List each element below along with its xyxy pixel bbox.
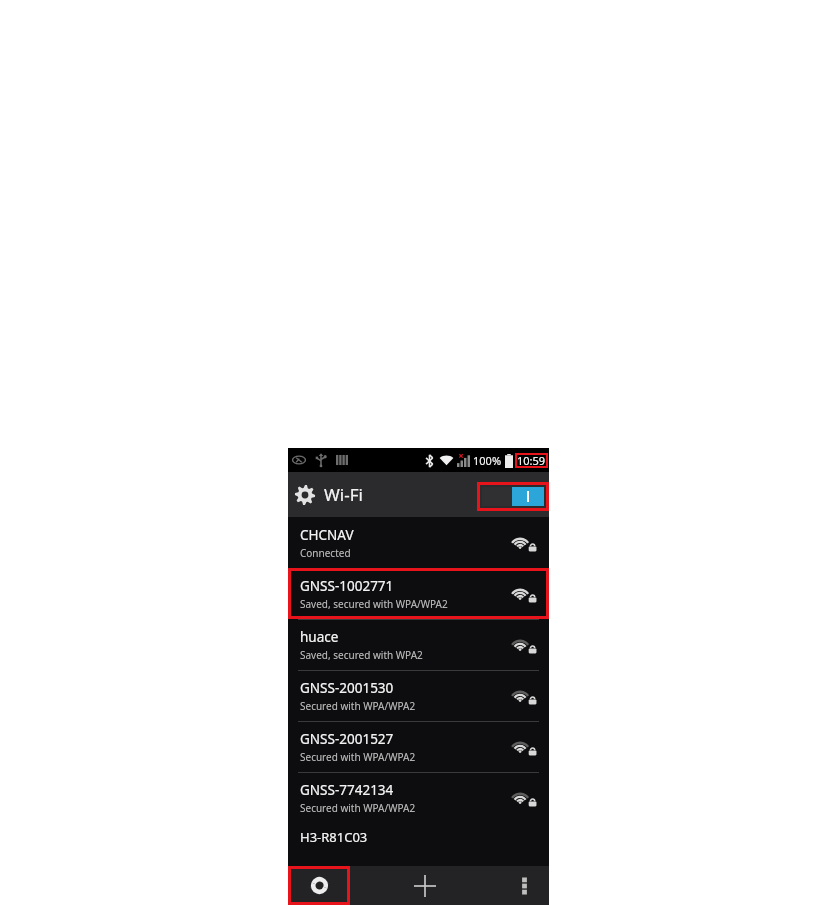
button[interactable]: More options	[499, 866, 549, 905]
staticText: 100%	[473, 453, 502, 468]
other: Settings	[294, 484, 316, 506]
staticText: Saved, secured with WPA/WPA2	[300, 597, 448, 611]
button[interactable]: GNSS-2001527	[288, 722, 549, 772]
button[interactable]: H3-R81C03	[288, 823, 549, 866]
button[interactable]: Settings	[294, 483, 363, 506]
button[interactable]: Wi-Fi on	[482, 487, 544, 506]
staticText: huace	[300, 628, 339, 646]
button[interactable]: Add network	[350, 866, 499, 905]
staticText: Saved, secured with WPA2	[300, 648, 423, 662]
staticText: Secured with WPA/WPA2	[300, 801, 416, 815]
staticText: Wi-Fi	[324, 483, 363, 506]
button[interactable]: GNSS-1002771	[288, 569, 549, 619]
other: Secured network	[511, 533, 537, 553]
other: Secured network	[511, 686, 537, 706]
other: Secured network	[511, 584, 537, 604]
button[interactable]: Scan	[288, 866, 350, 905]
staticText: Secured with WPA/WPA2	[300, 699, 416, 713]
other: Secured network	[511, 635, 537, 655]
staticText: CHCNAV	[300, 526, 354, 544]
button[interactable]: GNSS-2001530	[288, 671, 549, 721]
staticText: GNSS-2001527	[300, 730, 394, 748]
staticText: GNSS-2001530	[300, 679, 394, 697]
staticText: H3-R81C03	[300, 828, 368, 846]
other: Secured network	[511, 737, 537, 757]
button[interactable]: huace	[288, 620, 549, 670]
staticText: 10:59	[517, 453, 546, 468]
staticText: GNSS-7742134	[300, 781, 394, 799]
staticText: GNSS-1002771	[300, 577, 394, 595]
staticText: Connected	[300, 546, 351, 560]
other: Secured network	[511, 788, 537, 808]
button[interactable]: CHCNAV	[288, 518, 549, 568]
staticText: Secured with WPA/WPA2	[300, 750, 416, 764]
button[interactable]: GNSS-7742134	[288, 773, 549, 823]
